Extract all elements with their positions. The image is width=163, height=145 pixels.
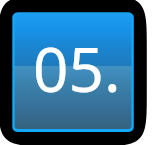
- button[interactable]: Day 05: [0, 0, 163, 145]
